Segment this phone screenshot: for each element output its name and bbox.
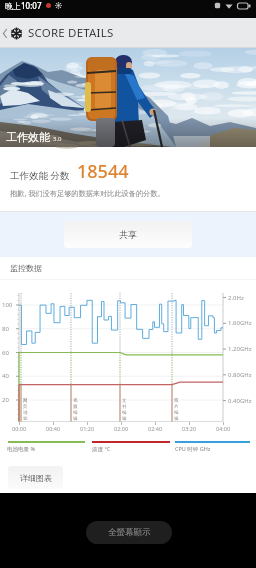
staticText: 共享 xyxy=(119,229,137,240)
staticText: 1.20GHz xyxy=(228,345,252,353)
staticText: 0.80GHz xyxy=(228,371,252,379)
staticText: SCORE DETAILS xyxy=(28,25,114,41)
staticText: 温度 °C xyxy=(92,445,111,453)
staticText: 2.0Hz xyxy=(228,294,244,302)
staticText: 页 xyxy=(23,404,28,410)
staticText: 照 xyxy=(174,398,179,404)
staticText: 全螢幕顯示 xyxy=(108,527,151,538)
staticText: 02:00 xyxy=(114,425,129,432)
staticText: 抱歉, 我们没有足够的数据来对比此设备的分数。 xyxy=(10,188,165,198)
staticText: 0.40GHz xyxy=(228,397,252,405)
button[interactable]: 详细图表 xyxy=(8,466,63,489)
staticText: 03:20 xyxy=(182,425,197,432)
staticText: 02:40 xyxy=(148,425,163,432)
staticText: 视 xyxy=(73,398,78,404)
button[interactable]: 全螢幕顯示 xyxy=(86,521,172,544)
staticText: 3.0 xyxy=(53,135,62,143)
staticText: 辑 xyxy=(174,416,179,422)
staticText: 工作效能 分数 xyxy=(10,169,70,182)
staticText: 网 xyxy=(23,398,28,404)
staticText: 晚上10:07 xyxy=(5,0,42,11)
staticText: 40 xyxy=(2,372,9,380)
staticText: 04:00 xyxy=(216,425,231,432)
staticText: 监控数据 xyxy=(10,263,42,273)
staticText: 编 xyxy=(174,410,179,416)
staticText: 100 xyxy=(2,301,13,309)
button[interactable]: 共享 xyxy=(64,221,192,248)
staticText: 1.60GHz xyxy=(228,319,252,327)
staticText: 编 xyxy=(73,410,78,416)
staticText: 文 xyxy=(122,398,127,404)
staticText: 01:20 xyxy=(80,425,95,432)
staticText: 书 xyxy=(122,404,127,410)
staticText: 编 xyxy=(122,410,127,416)
staticText: 浏 xyxy=(23,410,28,416)
staticText: 18544 xyxy=(77,159,129,184)
staticText: 辑 xyxy=(122,416,127,422)
staticText: 80 xyxy=(2,325,9,333)
staticText: CPU 时钟 GHz xyxy=(175,445,211,453)
staticText: 辑 xyxy=(73,416,78,422)
staticText: 00:00 xyxy=(12,425,27,432)
staticText: 览 xyxy=(23,416,28,422)
staticText: 电池电量 % xyxy=(7,445,36,453)
staticText: 频 xyxy=(73,404,78,410)
staticText: 详细图表 xyxy=(20,473,52,483)
staticText: 00:40 xyxy=(46,425,61,432)
staticText: 工作效能 xyxy=(6,130,50,144)
staticText: 片 xyxy=(174,404,179,410)
staticText: 20 xyxy=(2,396,9,404)
button[interactable]: Back xyxy=(0,18,9,48)
staticText: 60 xyxy=(2,349,9,357)
